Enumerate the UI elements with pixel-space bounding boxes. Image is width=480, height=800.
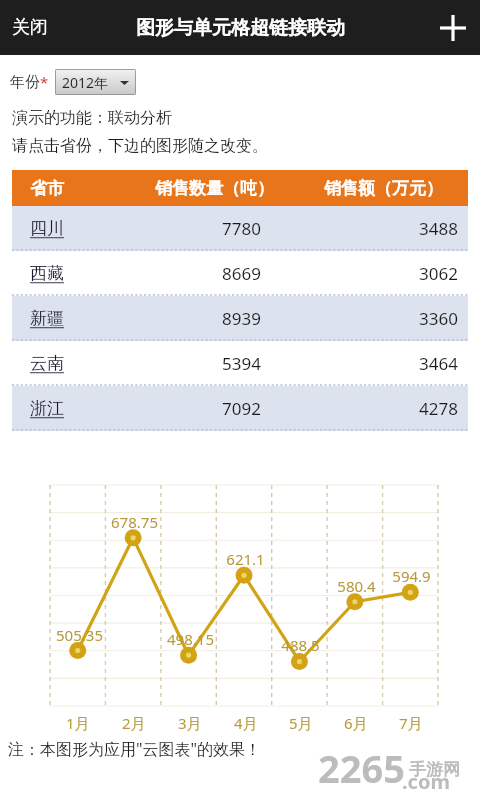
- staticText: 505.35: [56, 625, 103, 645]
- staticText: 488.5: [281, 635, 320, 655]
- staticText: 3464: [419, 352, 458, 375]
- staticText: 7月: [399, 713, 423, 733]
- staticText: 销售额（万元）: [324, 178, 443, 199]
- staticText: 年份: [10, 73, 40, 92]
- staticText: 4278: [419, 397, 458, 420]
- staticText: 8669: [222, 262, 261, 285]
- staticText: 6月: [344, 713, 368, 733]
- staticText: 3360: [419, 307, 458, 330]
- staticText: 1月: [66, 713, 90, 733]
- staticText: 7780: [222, 217, 261, 240]
- staticText: 四川: [30, 218, 64, 239]
- staticText: 7092: [222, 397, 261, 420]
- staticText: 594.9: [392, 566, 431, 586]
- staticText: 关闭: [12, 16, 48, 39]
- staticText: 621.1: [226, 549, 265, 569]
- staticText: 云南: [30, 353, 64, 374]
- button[interactable]: 四川: [12, 206, 468, 251]
- button[interactable]: Add: [425, 0, 480, 55]
- staticText: 注：本图形为应用"云图表"的效果！: [8, 738, 262, 760]
- staticText: 8939: [222, 307, 261, 330]
- staticText: 580.4: [337, 576, 376, 596]
- staticText: 3488: [419, 217, 458, 240]
- button[interactable]: 关闭: [0, 0, 60, 55]
- staticText: 3062: [419, 262, 458, 285]
- button[interactable]: 2012年: [55, 69, 136, 95]
- staticText: 请点击省份，下边的图形随之改变。: [12, 136, 268, 156]
- staticText: 浙江: [30, 398, 64, 419]
- staticText: 2月: [122, 713, 146, 733]
- staticText: 2012年: [62, 73, 109, 92]
- staticText: .com: [402, 768, 450, 795]
- staticText: 498.15: [167, 629, 214, 649]
- staticText: *: [40, 72, 49, 92]
- staticText: 2265: [318, 742, 405, 794]
- staticText: 4月: [234, 713, 258, 733]
- staticText: 新疆: [30, 308, 64, 329]
- staticText: 西藏: [30, 263, 64, 284]
- button[interactable]: 云南: [12, 341, 468, 386]
- button[interactable]: 新疆: [12, 296, 468, 341]
- staticText: 5394: [222, 352, 261, 375]
- staticText: 5月: [289, 713, 313, 733]
- staticText: 销售数量（吨）: [155, 178, 274, 199]
- staticText: 手游网: [409, 759, 460, 780]
- staticText: 省市: [30, 178, 64, 199]
- button[interactable]: 西藏: [12, 251, 468, 296]
- staticText: 678.75: [111, 512, 158, 532]
- staticText: 图形与单元格超链接联动: [136, 16, 345, 40]
- staticText: 3月: [178, 713, 202, 733]
- button[interactable]: 浙江: [12, 386, 468, 431]
- staticText: 演示的功能：联动分析: [12, 108, 172, 128]
